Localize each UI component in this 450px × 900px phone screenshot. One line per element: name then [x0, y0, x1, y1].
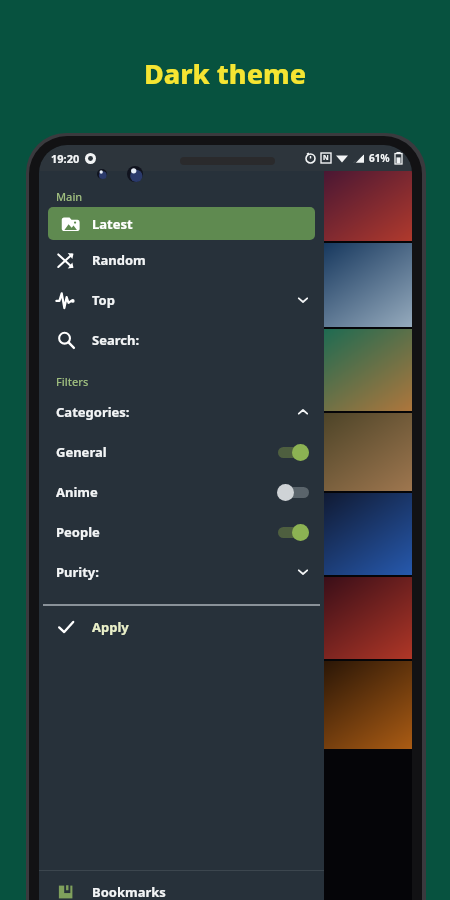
- staticText: Categories:: [56, 403, 130, 421]
- other: Bookmarks: [57, 883, 75, 900]
- button[interactable]: General: [39, 432, 324, 472]
- staticText: Purity:: [56, 563, 99, 581]
- staticText: N: [323, 153, 329, 163]
- button[interactable]: Bookmarks: [39, 871, 324, 900]
- other: Expand: [296, 293, 310, 307]
- staticText: Filters: [56, 374, 89, 389]
- staticText: Apply: [92, 618, 129, 636]
- button[interactable]: Categories:: [39, 392, 324, 432]
- other: Collapse: [296, 405, 310, 419]
- other: Latest: [61, 214, 80, 233]
- button[interactable]: Apply: [39, 606, 324, 648]
- other: Apply: [57, 618, 75, 636]
- button[interactable]: Anime: [39, 472, 324, 512]
- button[interactable]: Top: [39, 280, 324, 320]
- staticText: General: [56, 443, 107, 461]
- staticText: Anime: [56, 483, 98, 501]
- button[interactable]: Latest: [48, 207, 315, 240]
- staticText: Latest: [92, 215, 133, 233]
- staticText: Dark theme: [0, 55, 450, 92]
- staticText: People: [56, 523, 100, 541]
- staticText: Main: [56, 189, 83, 204]
- button[interactable]: Purity:: [39, 552, 324, 592]
- staticText: 61%: [369, 151, 390, 165]
- other: Random: [56, 251, 75, 270]
- button[interactable]: People: [39, 512, 324, 552]
- staticText: Bookmarks: [92, 883, 166, 900]
- other: Top: [56, 291, 75, 310]
- other: Expand: [296, 565, 310, 579]
- staticText: Search:: [92, 331, 140, 349]
- staticText: Top: [92, 291, 115, 309]
- staticText: Random: [92, 251, 146, 269]
- button[interactable]: Search: [39, 320, 324, 360]
- other: Search: [57, 331, 75, 349]
- staticText: 19:20: [51, 151, 80, 166]
- button[interactable]: Random: [39, 240, 324, 280]
